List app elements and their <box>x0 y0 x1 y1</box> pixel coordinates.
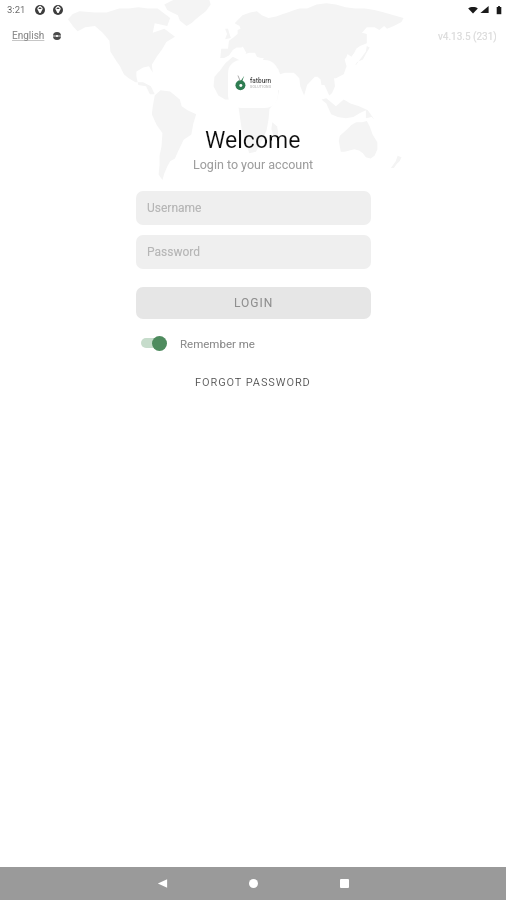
staticText: Username <box>147 201 202 215</box>
button[interactable]: Username <box>136 191 371 225</box>
button[interactable]: Home <box>208 867 299 900</box>
button[interactable]: English <box>10 28 63 44</box>
staticText: Password <box>147 245 201 259</box>
button[interactable]: FORGOT PASSWORD <box>187 371 319 394</box>
button[interactable]: Recent apps <box>299 867 390 900</box>
staticText: Remember me <box>180 337 255 350</box>
staticText: LOGIN <box>234 296 274 310</box>
staticText: v4.13.5 (231) <box>438 31 497 43</box>
button[interactable]: Remember me <box>141 330 255 356</box>
staticText: FORGOT PASSWORD <box>195 376 311 389</box>
staticText: 3:21 <box>7 4 26 15</box>
button[interactable]: LOGIN <box>136 287 371 319</box>
button[interactable]: Password <box>136 235 371 269</box>
staticText: English <box>12 30 45 42</box>
button[interactable]: Back <box>117 867 208 900</box>
staticText: Welcome <box>205 127 301 154</box>
staticText: Login to your account <box>193 157 314 172</box>
staticText: SOLUTIONS <box>250 85 272 89</box>
staticText: fatburn <box>250 77 272 85</box>
